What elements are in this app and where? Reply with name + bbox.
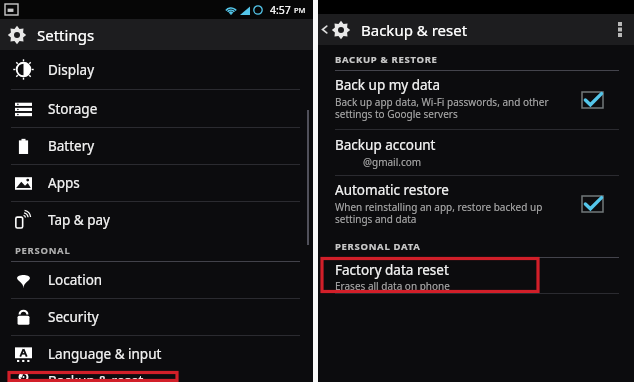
other: Enabled (582, 92, 603, 108)
staticText: BACKUP & RESTORE (335, 53, 438, 66)
button[interactable]: More options (606, 14, 634, 45)
staticText: Battery (48, 137, 95, 155)
staticText: Language & input (48, 345, 162, 363)
button[interactable]: Backup account (318, 130, 634, 175)
button[interactable]: Location (0, 262, 313, 298)
staticText: @gmail.com (363, 155, 422, 169)
button[interactable]: Back up my data (318, 71, 634, 129)
button[interactable]: Apps (0, 165, 313, 201)
staticText: Settings (37, 25, 95, 45)
staticText: Tap & pay (48, 211, 110, 229)
staticText: Back up my data (335, 76, 441, 94)
staticText: Backup & reset (48, 372, 144, 382)
button[interactable]: Storage (0, 90, 313, 127)
button[interactable]: Back (318, 14, 468, 45)
other: Enabled (582, 196, 603, 212)
staticText: Backup account (335, 136, 436, 154)
staticText: Apps (48, 174, 80, 192)
button[interactable]: Battery (0, 128, 313, 164)
button[interactable]: Factory data reset (318, 258, 634, 293)
staticText: Location (48, 271, 103, 289)
button[interactable]: Tap & pay (0, 202, 313, 238)
staticText: PERSONAL (15, 244, 71, 257)
staticText: Back up app data, Wi-Fi passwords, and o… (335, 95, 566, 121)
staticText: When reinstalling an app, restore backed… (335, 200, 566, 226)
staticText: PM (294, 5, 306, 15)
staticText: 4:57 (270, 3, 291, 17)
staticText: Automatic restore (335, 181, 449, 199)
button[interactable]: Automatic restore (318, 176, 634, 232)
button[interactable]: Display (0, 50, 313, 89)
button[interactable]: Settings (0, 19, 313, 50)
staticText: Security (48, 308, 99, 326)
button[interactable]: Backup & reset (0, 372, 313, 382)
other: Back (320, 25, 329, 34)
staticText: Storage (48, 100, 98, 118)
button[interactable]: Language & input (0, 336, 313, 372)
staticText: Erases all data on phone (335, 279, 450, 293)
staticText: Display (48, 61, 95, 79)
staticText: Factory data reset (335, 261, 449, 279)
staticText: Backup & reset (361, 20, 468, 40)
button[interactable]: Security (0, 299, 313, 335)
staticText: PERSONAL DATA (335, 240, 421, 253)
